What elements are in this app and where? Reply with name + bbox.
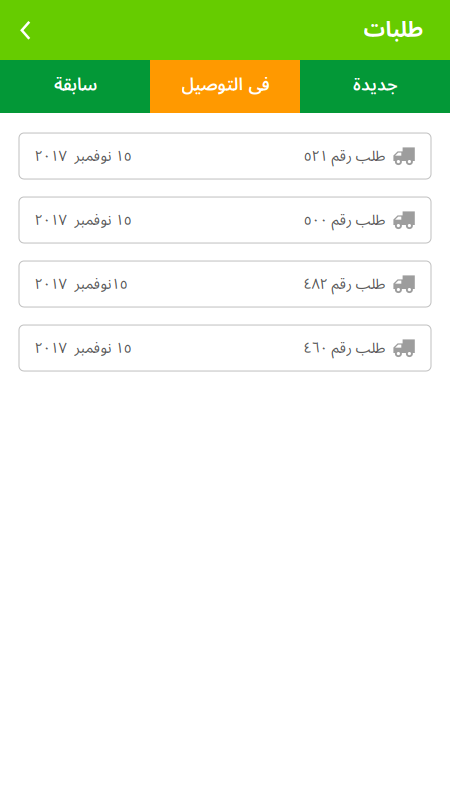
- staticText: ١٥نوفمبر ٢٠١٧: [34, 268, 127, 299]
- button[interactable]: ١٥ نوفمبر ٢٠١٧: [19, 325, 431, 371]
- button[interactable]: ١٥ نوفمبر ٢٠١٧: [19, 133, 431, 179]
- button[interactable]: فى التوصيل: [150, 60, 300, 113]
- button[interactable]: سابقة: [0, 60, 150, 113]
- staticText: ١٥ نوفمبر ٢٠١٧: [34, 140, 131, 171]
- staticText: جديدة: [352, 67, 397, 103]
- button[interactable]: جديدة: [300, 60, 450, 113]
- staticText: طلب رقم ٥٠٠: [303, 204, 385, 235]
- staticText: طلبات: [363, 7, 423, 53]
- staticText: ١٥ نوفمبر ٢٠١٧: [34, 332, 131, 363]
- staticText: ١٥ نوفمبر ٢٠١٧: [34, 204, 131, 235]
- button[interactable]: ١٥نوفمبر ٢٠١٧: [19, 261, 431, 307]
- staticText: طلب رقم ٤٦٠: [303, 332, 385, 363]
- button[interactable]: ١٥ نوفمبر ٢٠١٧: [19, 197, 431, 243]
- staticText: فى التوصيل: [181, 67, 269, 103]
- staticText: طلب رقم ٤٨٢: [303, 268, 385, 299]
- staticText: سابقة: [53, 67, 96, 103]
- staticText: طلب رقم ٥٢١: [303, 140, 385, 171]
- button[interactable]: Back: [4, 8, 48, 52]
